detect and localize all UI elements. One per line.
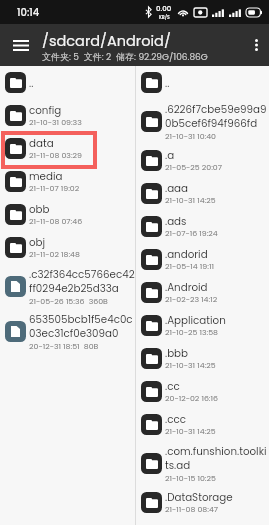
staticText: .Application xyxy=(165,313,226,327)
staticText: /sdcard/Android/ xyxy=(42,31,171,51)
staticText: 10:14 xyxy=(17,5,40,19)
button[interactable]: obb xyxy=(0,198,135,231)
staticText: .. xyxy=(165,76,170,90)
button[interactable]: .Android xyxy=(136,276,269,309)
staticText: 21-10-31 09:33 xyxy=(29,117,82,128)
staticText: .andorid xyxy=(165,247,208,261)
button[interactable]: .DataStorage xyxy=(136,486,269,519)
staticText: 21-11-08 07:46 xyxy=(29,216,83,227)
staticText: config xyxy=(29,103,62,117)
staticText: 21-11-07 19:02 xyxy=(29,183,80,194)
button[interactable]: .6226f7cbe59e99a90b5cef6f94f966fd xyxy=(136,99,269,144)
staticText: 21-10-31 14:25 xyxy=(165,195,216,206)
staticText: .Android xyxy=(165,280,208,294)
button[interactable]: .andorid xyxy=(136,243,269,276)
staticText: 21-11-08 03:29 xyxy=(29,150,83,161)
staticText: 21-05-14 19:11 xyxy=(165,261,214,272)
staticText: .a xyxy=(165,148,175,162)
staticText: .ads xyxy=(165,214,187,228)
staticText: media xyxy=(29,169,63,183)
button[interactable]: .ads xyxy=(136,210,269,243)
staticText: .DataStorage xyxy=(165,490,233,504)
staticText: 21-10-31 14:25 xyxy=(165,426,216,437)
staticText: 0.00 xyxy=(156,4,172,14)
staticText: 21-10-31 14:25 xyxy=(165,360,216,371)
staticText: .cc xyxy=(165,379,180,393)
staticText: .bbb xyxy=(165,346,189,360)
staticText: 21-05-26 15:36 360B xyxy=(29,296,108,307)
staticText: 20-12-02 16:16 xyxy=(165,393,218,404)
staticText: 21-10-25 13:58 xyxy=(165,327,218,338)
button[interactable]: .a xyxy=(136,144,269,177)
staticText: .. xyxy=(29,76,34,90)
staticText: 21-05-25 20:07 xyxy=(165,162,223,173)
staticText: 653505bcb1f5e4c0c03ec31cf0e309a0 xyxy=(29,312,135,341)
staticText: 21-07-16 19:24 xyxy=(165,228,218,239)
staticText: .ccc xyxy=(165,412,186,426)
button[interactable]: .aaa xyxy=(136,177,269,210)
button[interactable]: More options xyxy=(243,24,269,66)
staticText: .6226f7cbe59e99a90b5cef6f94f966fd xyxy=(165,102,269,131)
button[interactable]: config xyxy=(0,99,135,132)
staticText: data xyxy=(29,136,54,150)
button[interactable]: .. xyxy=(0,66,135,99)
staticText: obj xyxy=(29,235,46,249)
staticText: KB/S xyxy=(159,14,170,20)
button[interactable]: .ccc xyxy=(136,408,269,441)
staticText: .c32f364cc5766ec42ff0294e2b25d33a xyxy=(29,267,135,296)
staticText: 20-12-31 18:51 80B xyxy=(29,341,99,352)
button[interactable]: Open navigation menu xyxy=(0,24,42,66)
button[interactable]: obj xyxy=(0,231,135,264)
staticText: .aaa xyxy=(165,181,189,195)
staticText: 21-10-31 10:40 xyxy=(165,131,216,142)
staticText: .com.funshion.toolkits.ad xyxy=(165,444,269,473)
button[interactable]: .com.funshion.toolkits.ad xyxy=(136,441,269,486)
button[interactable]: .bbb xyxy=(136,342,269,375)
button[interactable]: 653505bcb1f5e4c0c03ec31cf0e309a0 xyxy=(0,309,135,354)
staticText: 文件夹: 5 文件: 2 储存: 92.29G/106.86G xyxy=(42,51,208,64)
button[interactable]: .Application xyxy=(136,309,269,342)
button[interactable]: .. xyxy=(136,66,269,99)
staticText: 21-11-02 18:48 xyxy=(29,249,80,260)
staticText: 21-10-15 10:25 xyxy=(165,473,216,484)
button[interactable]: .cc xyxy=(136,375,269,408)
button[interactable]: media xyxy=(0,165,135,198)
staticText: 21-11-08 08:47 xyxy=(165,504,219,515)
button[interactable]: .c32f364cc5766ec42ff0294e2b25d33a xyxy=(0,264,135,309)
button[interactable]: data xyxy=(0,132,135,165)
staticText: 21-02-23 14:12 xyxy=(165,294,218,305)
staticText: obb xyxy=(29,202,50,216)
